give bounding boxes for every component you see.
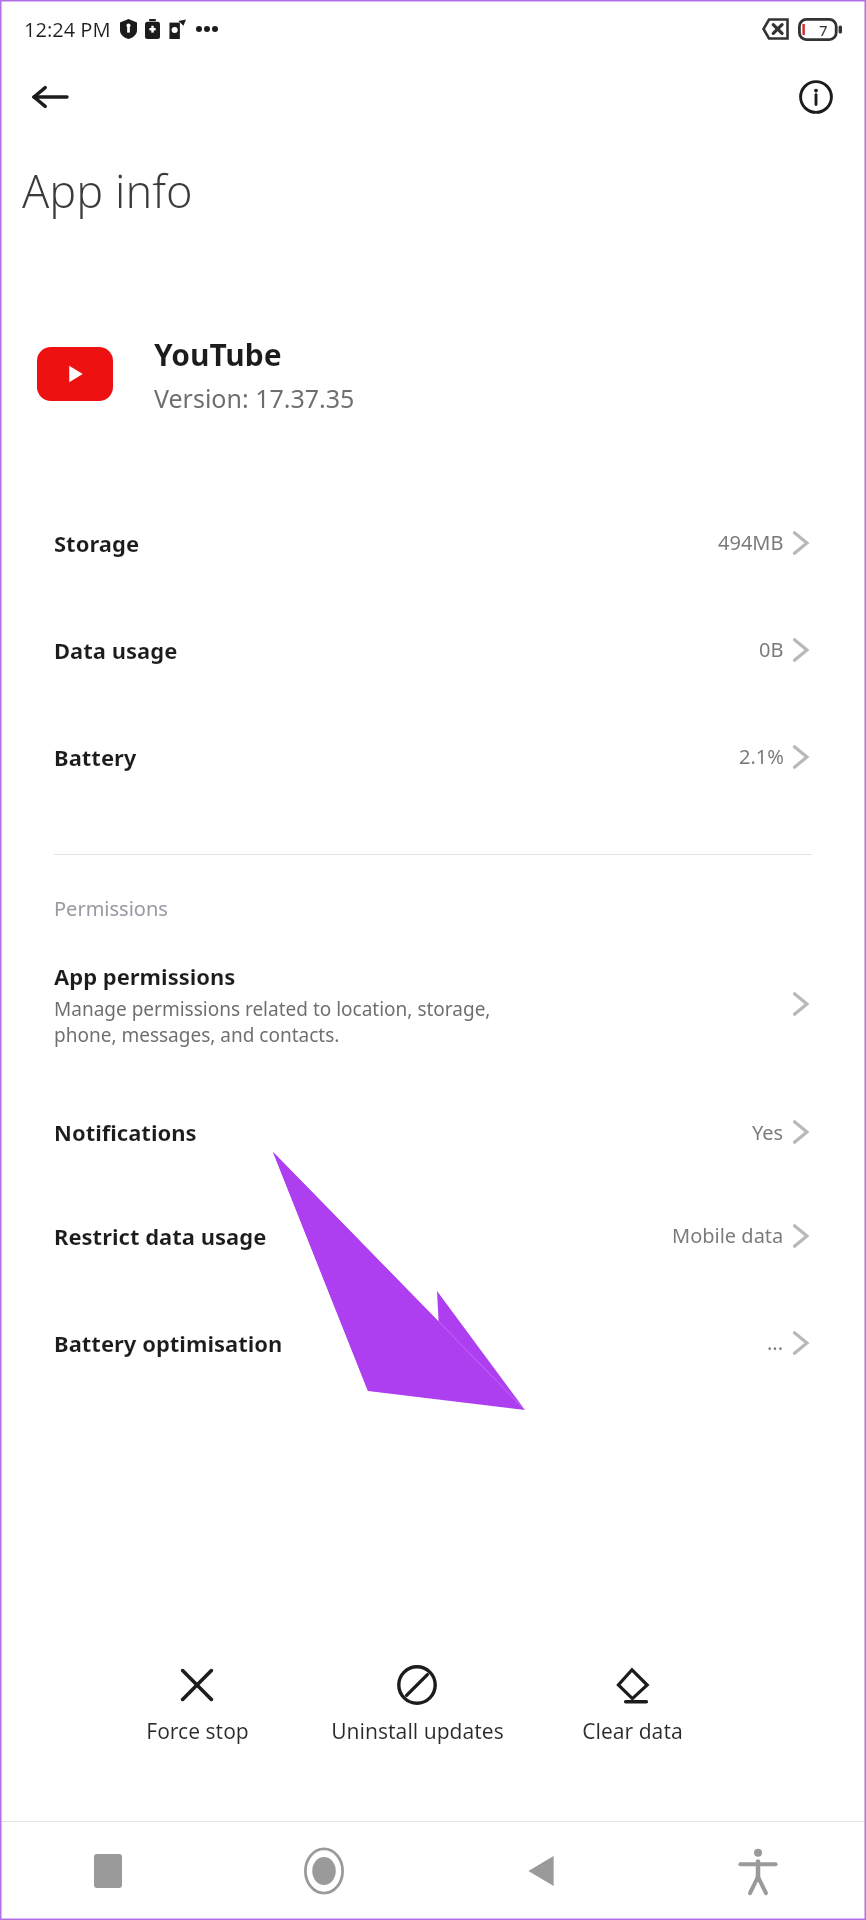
staticText: Data usage bbox=[54, 635, 178, 665]
staticText: Manage permissions related to location, … bbox=[54, 996, 491, 1048]
button[interactable]: Force stop bbox=[92, 1659, 302, 1752]
button[interactable]: Storage bbox=[38, 489, 828, 596]
staticText: 7 bbox=[819, 20, 828, 40]
staticText: Mobile data bbox=[672, 1222, 784, 1249]
staticText: Clear data bbox=[582, 1717, 683, 1746]
button[interactable]: Home bbox=[216, 1822, 432, 1920]
button[interactable]: Uninstall updates bbox=[302, 1659, 532, 1752]
button[interactable]: Back bbox=[432, 1822, 649, 1920]
staticText: Version: 17.37.35 bbox=[154, 381, 355, 415]
button[interactable]: App details bbox=[790, 71, 842, 123]
button[interactable]: Notifications bbox=[38, 1082, 828, 1182]
staticText: Battery optimisation bbox=[54, 1328, 283, 1358]
staticText: Force stop bbox=[146, 1717, 249, 1746]
staticText: ... bbox=[767, 1329, 784, 1356]
staticText: Permissions bbox=[54, 895, 168, 922]
staticText: 0B bbox=[759, 636, 784, 663]
button[interactable]: Back bbox=[24, 71, 76, 123]
staticText: Uninstall updates bbox=[331, 1717, 504, 1746]
button[interactable]: Battery bbox=[38, 703, 828, 810]
button[interactable]: Recents bbox=[0, 1822, 216, 1920]
staticText: Storage bbox=[54, 528, 140, 558]
staticText: App permissions bbox=[54, 961, 236, 991]
staticText: YouTube bbox=[154, 334, 282, 375]
staticText: App info bbox=[22, 160, 193, 221]
staticText: Battery bbox=[54, 742, 137, 772]
button[interactable]: Battery optimisation bbox=[38, 1289, 828, 1396]
button[interactable]: Accessibility bbox=[649, 1822, 866, 1920]
button[interactable]: Restrict data usage bbox=[38, 1182, 828, 1289]
staticText: Yes bbox=[752, 1119, 784, 1146]
staticText: Notifications bbox=[54, 1117, 197, 1147]
button[interactable]: App permissions bbox=[38, 942, 828, 1066]
button[interactable]: Data usage bbox=[38, 596, 828, 703]
staticText: 494MB bbox=[718, 529, 784, 556]
staticText: Restrict data usage bbox=[54, 1221, 267, 1251]
staticText: 12:24 PM bbox=[24, 16, 111, 43]
staticText: 2.1% bbox=[739, 743, 784, 770]
button[interactable]: Clear data bbox=[532, 1659, 732, 1752]
